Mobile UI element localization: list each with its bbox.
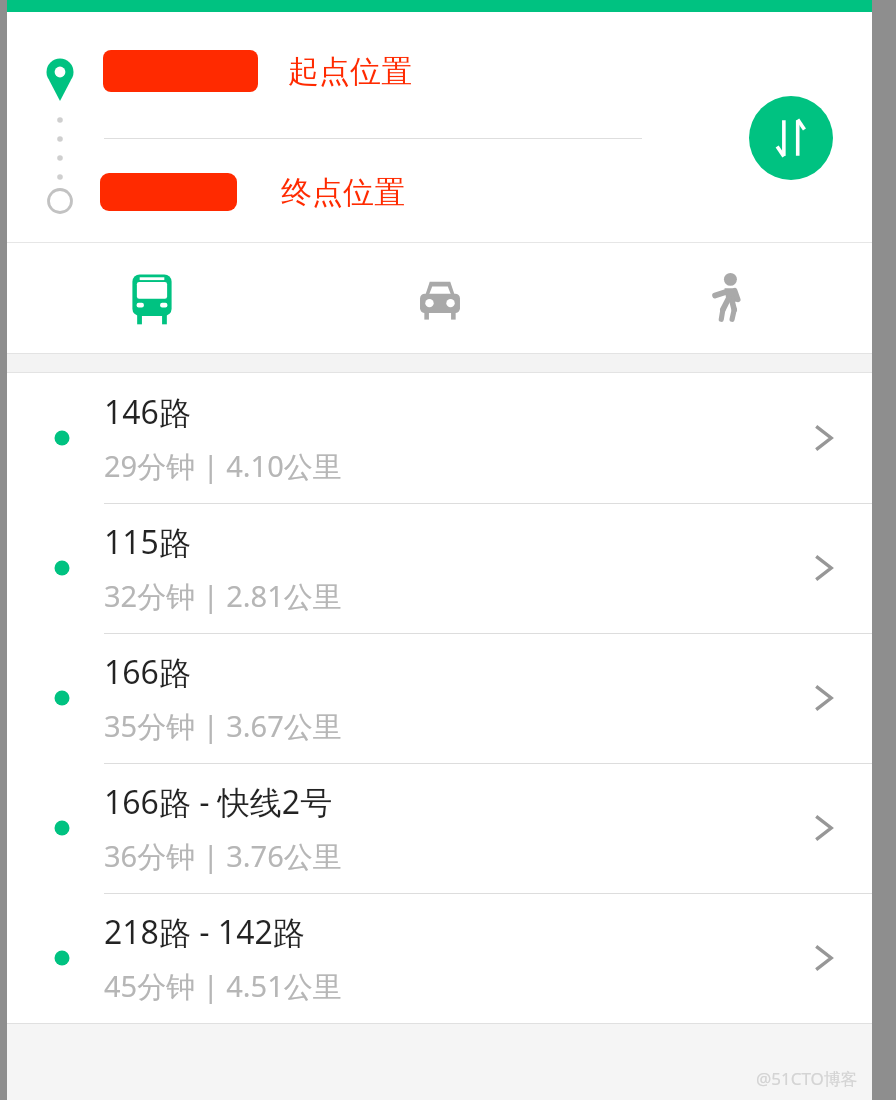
staticText: 终点位置 [281, 173, 405, 212]
staticText: @51CTO博客 [756, 1067, 858, 1090]
staticText: 45分钟 | 4.51公里 [104, 966, 342, 1006]
staticText: 166路 - 快线2号 [104, 780, 333, 824]
button[interactable]: 146路 [7, 373, 872, 503]
staticText: 166路 [104, 650, 191, 694]
button[interactable]: Bus routes [7, 243, 296, 353]
button[interactable]: 218路 - 142路 [7, 893, 872, 1023]
staticText: 36分钟 | 3.76公里 [104, 836, 342, 876]
button[interactable]: 起点位置 [7, 12, 872, 130]
button[interactable]: Driving routes [296, 243, 584, 353]
staticText: 32分钟 | 2.81公里 [104, 576, 342, 616]
staticText: 29分钟 | 4.10公里 [104, 446, 342, 486]
button[interactable]: 终点位置 [7, 144, 872, 240]
staticText: 起点位置 [288, 52, 412, 91]
button[interactable]: Walking routes [584, 243, 872, 353]
staticText: 146路 [104, 390, 191, 434]
staticText: 218路 - 142路 [104, 910, 305, 954]
button[interactable]: 166路 - 快线2号 [7, 763, 872, 893]
button[interactable]: Swap origin and destination [749, 96, 833, 180]
button[interactable]: 115路 [7, 503, 872, 633]
staticText: 115路 [104, 520, 191, 564]
staticText: 35分钟 | 3.67公里 [104, 706, 342, 746]
button[interactable]: 166路 [7, 633, 872, 763]
